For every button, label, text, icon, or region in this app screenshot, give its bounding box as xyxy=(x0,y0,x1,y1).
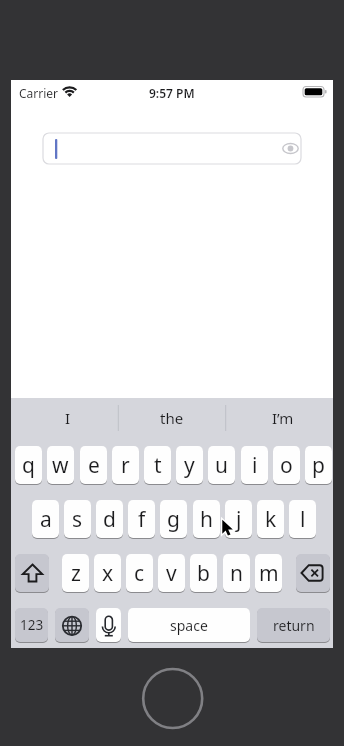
staticText: k xyxy=(265,505,277,534)
staticText: l xyxy=(300,505,306,534)
button[interactable]: n xyxy=(223,554,250,592)
staticText: e xyxy=(88,451,100,480)
button[interactable]: return xyxy=(257,608,330,642)
staticText: b xyxy=(197,559,210,588)
button[interactable]: o xyxy=(273,446,300,484)
staticText: space xyxy=(170,616,208,635)
staticText: u xyxy=(215,451,228,480)
staticText: y xyxy=(184,451,195,480)
button[interactable]: b xyxy=(190,554,217,592)
staticText: o xyxy=(280,451,293,480)
button[interactable]: l xyxy=(289,500,316,538)
button[interactable] xyxy=(296,554,330,592)
staticText: x xyxy=(102,559,114,588)
button[interactable]: j xyxy=(225,500,252,538)
button[interactable]: s xyxy=(64,500,91,538)
button[interactable]: space xyxy=(128,608,250,642)
button[interactable]: d xyxy=(96,500,123,538)
button[interactable]: q xyxy=(15,446,42,484)
staticText: a xyxy=(40,505,52,534)
staticText: r xyxy=(121,451,130,480)
staticText: d xyxy=(103,505,116,534)
staticText: I’m xyxy=(272,408,294,428)
button[interactable]: f xyxy=(128,500,155,538)
button[interactable]: g xyxy=(160,500,187,538)
button[interactable]: z xyxy=(62,554,89,592)
staticText: g xyxy=(167,505,180,534)
staticText: c xyxy=(134,559,145,588)
staticText: Carrier xyxy=(19,85,59,101)
button[interactable]: x xyxy=(94,554,121,592)
button[interactable]: r xyxy=(112,446,139,484)
staticText: z xyxy=(71,559,81,588)
staticText: f xyxy=(138,505,146,534)
button[interactable]: t xyxy=(144,446,171,484)
button[interactable]: e xyxy=(80,446,107,484)
staticText: j xyxy=(236,505,242,534)
staticText: i xyxy=(252,451,258,480)
button[interactable] xyxy=(43,133,301,164)
staticText: the xyxy=(160,408,184,428)
button[interactable]: v xyxy=(158,554,185,592)
staticText: v xyxy=(166,559,177,588)
staticText: q xyxy=(22,451,35,480)
button[interactable]: c xyxy=(126,554,153,592)
button[interactable]: i xyxy=(241,446,268,484)
staticText: p xyxy=(312,451,325,480)
button[interactable]: y xyxy=(176,446,203,484)
button[interactable] xyxy=(96,608,121,642)
button[interactable]: h xyxy=(193,500,220,538)
button[interactable]: w xyxy=(47,446,74,484)
button[interactable]: k xyxy=(257,500,284,538)
button[interactable] xyxy=(15,554,49,592)
button[interactable] xyxy=(55,608,89,642)
staticText: I xyxy=(65,408,71,428)
button[interactable]: 123 xyxy=(15,608,48,642)
staticText: n xyxy=(230,559,243,588)
staticText: return xyxy=(273,616,315,635)
staticText: 123 xyxy=(20,616,44,634)
button[interactable]: I’m xyxy=(229,398,336,438)
staticText: s xyxy=(72,505,83,534)
button[interactable]: I xyxy=(14,398,121,438)
button[interactable]: a xyxy=(32,500,59,538)
staticText: 9:57 PM xyxy=(149,85,195,101)
staticText: t xyxy=(154,451,162,480)
button[interactable]: m xyxy=(255,554,282,592)
staticText: w xyxy=(52,451,69,480)
staticText: h xyxy=(200,505,213,534)
button[interactable]: p xyxy=(305,446,332,484)
button[interactable]: the xyxy=(118,398,225,438)
button[interactable]: u xyxy=(208,446,235,484)
staticText: m xyxy=(259,559,279,588)
